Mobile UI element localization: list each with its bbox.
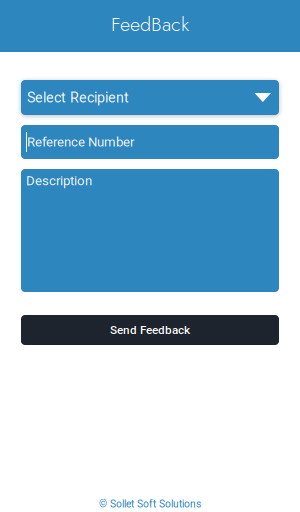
staticText: Send Feedback (110, 323, 190, 337)
staticText: Select Recipient (27, 89, 129, 106)
button[interactable]: Send Feedback (21, 315, 279, 345)
button[interactable]: Reference Number (21, 125, 279, 159)
button[interactable]: Description (21, 169, 279, 292)
staticText: Reference Number (27, 134, 134, 150)
staticText: Description (26, 173, 92, 188)
staticText: FeedBack (111, 10, 189, 38)
staticText: © Sollet Soft Solutions (99, 498, 201, 510)
button[interactable]: Select Recipient (21, 80, 279, 115)
